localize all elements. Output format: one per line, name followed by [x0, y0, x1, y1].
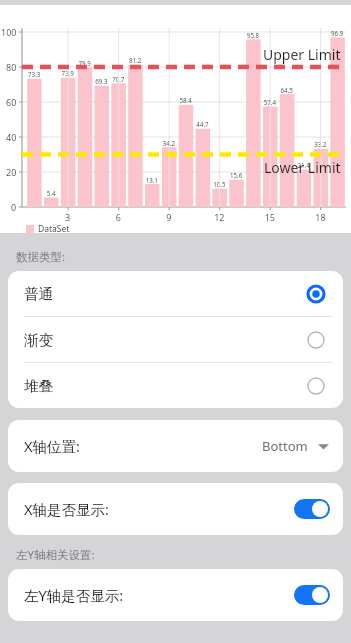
staticText: 堆叠: [24, 377, 53, 395]
staticText: X轴位置:: [24, 436, 80, 456]
staticText: 渐变: [24, 331, 53, 349]
staticText: 数据类型:: [16, 249, 66, 265]
button[interactable]: X轴位置:: [8, 420, 343, 472]
other: Expand: [318, 441, 329, 452]
button[interactable]: 渐变: [8, 317, 343, 362]
staticText: X轴是否显示:: [24, 499, 109, 519]
staticText: 左Y轴相关设置:: [16, 547, 95, 563]
staticText: Bottom: [262, 437, 308, 455]
button[interactable]: X轴是否显示:: [8, 483, 343, 535]
button[interactable]: 堆叠: [8, 363, 343, 408]
staticText: 左Y轴是否显示:: [24, 585, 124, 605]
staticText: 普通: [24, 285, 53, 303]
button[interactable]: 左Y轴是否显示:: [8, 569, 343, 621]
button[interactable]: 普通: [8, 271, 343, 316]
